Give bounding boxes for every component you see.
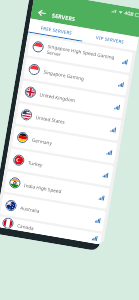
staticText: Singapore Gaming (43, 69, 116, 87)
staticText: Germany (31, 137, 104, 155)
button[interactable]: India High Speed (4, 171, 110, 209)
staticText: FREE SERVERS (40, 25, 73, 36)
staticText: India High Speed (24, 182, 97, 200)
button[interactable]: Turkey (8, 148, 114, 186)
button[interactable]: United States (15, 103, 121, 141)
button[interactable]: VIP SERVERS (82, 28, 139, 50)
button[interactable]: Singapore Gaming (23, 57, 129, 96)
staticText: Australia (20, 205, 93, 223)
button[interactable]: Back (34, 5, 49, 20)
staticText: SERVERS (52, 11, 76, 22)
staticText: Turkey (27, 159, 100, 177)
staticText: United States (35, 114, 108, 132)
staticText: VIP SERVERS (96, 34, 125, 45)
button[interactable]: United Kingdom (19, 80, 125, 118)
staticText: Canada (17, 222, 90, 241)
button[interactable]: FREE SERVERS (28, 19, 84, 41)
button[interactable]: Australia (0, 194, 106, 232)
staticText: Singapore High Speed Gaming Server (46, 43, 120, 67)
button[interactable]: Germany (11, 126, 118, 164)
staticText: 4GB (124, 9, 134, 17)
staticText: United Kingdom (39, 91, 112, 109)
button[interactable]: Canada (0, 216, 102, 245)
button[interactable]: Singapore High Speed Gaming Server (27, 35, 133, 73)
